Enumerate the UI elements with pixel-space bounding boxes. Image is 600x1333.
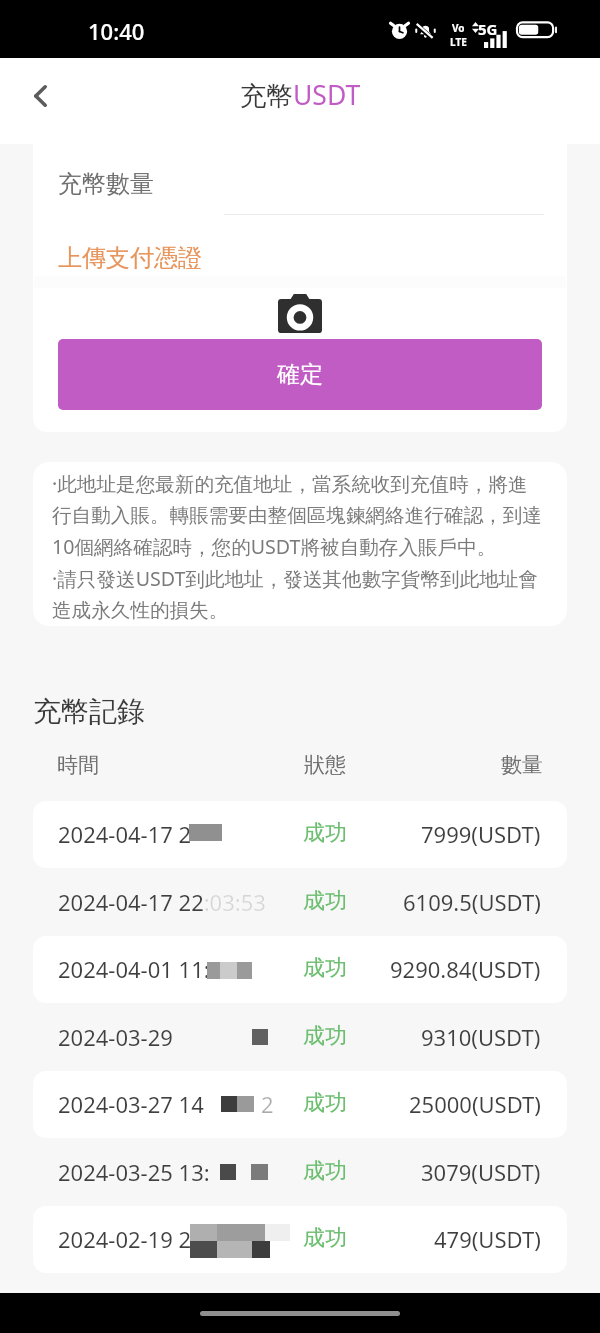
staticText: 6109.5(USDT) xyxy=(403,887,541,917)
staticText: LTE xyxy=(450,35,467,49)
button[interactable]: 2024-03-29 xyxy=(33,1004,567,1071)
staticText: 成功 xyxy=(303,819,347,847)
staticText: 9310(USDT) xyxy=(421,1022,541,1052)
staticText: 10:40 xyxy=(88,16,145,46)
button[interactable]: Back xyxy=(16,72,64,120)
staticText: 2024-04-17 2 xyxy=(58,819,192,849)
button[interactable]: 2024-04-17 22:03:53 xyxy=(33,869,567,936)
staticText: 2024-03-27 14 xyxy=(58,1089,204,1119)
staticText: 7999(USDT) xyxy=(421,819,541,849)
staticText: 成功 xyxy=(303,1224,347,1252)
staticText: 3079(USDT) xyxy=(421,1157,541,1187)
staticText: 2024-03-29 xyxy=(58,1022,173,1052)
staticText: 2024-04-17 22:03:53 xyxy=(58,887,266,917)
button[interactable]: 2024-03-27 14 xyxy=(33,1071,567,1138)
staticText: 9290.84(USDT) xyxy=(390,954,541,984)
staticText: 充幣記錄 xyxy=(33,694,145,729)
staticText: ·此地址是您最新的充值地址，當系統收到充值時，將進 行自動入賬。轉賬需要由整個區… xyxy=(52,470,542,623)
staticText: 確定 xyxy=(277,360,323,389)
staticText: 狀態 xyxy=(304,752,346,778)
staticText: 2024-04-01 11: xyxy=(58,954,210,984)
staticText: Vo xyxy=(452,21,465,35)
staticText: 2 xyxy=(261,1089,274,1119)
staticText: 25000(USDT) xyxy=(409,1089,541,1119)
button[interactable]: Upload payment proof photo xyxy=(58,288,542,339)
button[interactable]: 2024-03-25 13: xyxy=(33,1139,567,1206)
staticText: 2024-02-19 2 xyxy=(58,1224,192,1254)
staticText: 充幣USDT xyxy=(240,77,361,113)
staticText: 479(USDT) xyxy=(434,1224,541,1254)
staticText: 成功 xyxy=(303,1089,347,1117)
staticText: 數量 xyxy=(501,752,543,778)
staticText: 2024-03-25 13: xyxy=(58,1157,210,1187)
button[interactable]: 確定 xyxy=(58,339,542,410)
staticText: 時間 xyxy=(57,752,99,778)
staticText: 成功 xyxy=(303,887,347,915)
staticText: 成功 xyxy=(303,1022,347,1050)
button[interactable]: 2024-04-01 11: xyxy=(33,936,567,1003)
staticText: 成功 xyxy=(303,1157,347,1185)
staticText: 5G xyxy=(478,19,498,39)
button[interactable]: 2024-02-19 2 xyxy=(33,1206,567,1273)
staticText: 成功 xyxy=(303,954,347,982)
button[interactable]: 2024-04-17 2 xyxy=(33,801,567,868)
staticText: 充幣數量 xyxy=(58,169,154,199)
staticText: 上傳支付憑證 xyxy=(58,243,202,273)
